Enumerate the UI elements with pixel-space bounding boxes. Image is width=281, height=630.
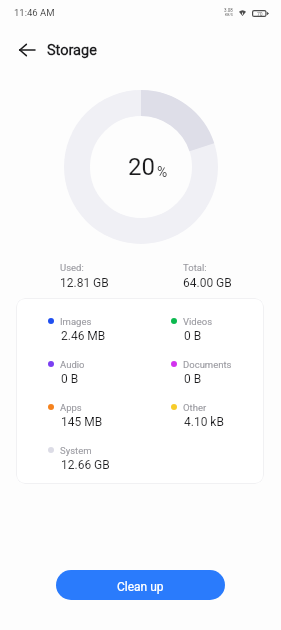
staticText: 0 B [184,372,202,386]
button[interactable]: Back [12,35,41,64]
staticText: Storage [47,42,97,59]
staticText: 20 [128,153,155,181]
staticText: KB/S [225,13,233,17]
staticText: 0 B [184,329,202,343]
staticText: 3.08 [224,8,233,13]
staticText: Videos [183,316,213,327]
staticText: Other [183,402,207,413]
staticText: Clean up [117,580,164,594]
button[interactable]: Clean up [56,570,225,600]
staticText: 0 B [61,372,79,386]
staticText: Images [60,316,92,327]
staticText: 64.00 GB [183,276,232,290]
staticText: 4.10 kB [184,415,224,429]
staticText: Documents [183,359,232,370]
staticText: 12.66 GB [61,458,110,472]
staticText: Audio [60,359,85,370]
staticText: Total: [183,262,207,273]
staticText: 145 MB [61,415,103,429]
staticText: 12.81 GB [60,276,109,290]
staticText: Apps [60,402,82,413]
staticText: Used: [60,262,84,273]
staticText: System [60,445,92,456]
staticText: 70 [257,11,263,17]
staticText: % [157,164,168,180]
staticText: 11:46 AM [14,7,55,18]
staticText: 2.46 MB [61,329,106,343]
